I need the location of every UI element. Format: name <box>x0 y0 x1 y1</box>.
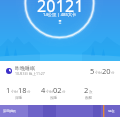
staticText: 02 <box>53 85 62 95</box>
staticText: 20121 <box>37 0 84 17</box>
staticText: 夜醒 <box>85 96 92 100</box>
button[interactable]: 4 <box>36 85 71 100</box>
button[interactable]: Sleep <box>0 61 120 80</box>
staticText: 深度睡眠 <box>3 109 16 113</box>
staticText: 小时 <box>46 90 53 94</box>
button[interactable]: 1 <box>0 85 36 100</box>
staticText: 分 <box>27 90 31 94</box>
staticText: 5 <box>90 66 95 76</box>
staticText: 浅睡 <box>50 96 57 100</box>
staticText: 18 <box>18 85 27 95</box>
staticText: 10月3日 晚上11:27 <box>15 71 45 76</box>
staticText: 1 <box>6 85 11 95</box>
staticText: 次 <box>89 90 93 94</box>
other: Sleep <box>6 68 12 74</box>
staticText: 小时 <box>95 71 102 75</box>
staticText: 14公里 | 485大卡 <box>43 12 77 18</box>
staticText: 深睡 <box>15 96 22 100</box>
staticText: 小时 <box>11 90 18 94</box>
staticText: 分 <box>62 90 66 94</box>
staticText: 分 <box>111 71 115 75</box>
button[interactable]: 2 <box>71 85 106 100</box>
staticText: 昨晚睡眠 <box>15 65 35 71</box>
staticText: 2 <box>84 85 89 95</box>
staticText: 现在 <box>108 109 115 113</box>
staticText: 4 <box>41 85 46 95</box>
button[interactable]: 深度睡眠 <box>0 105 120 117</box>
staticText: 20 <box>102 66 111 76</box>
other: Goal <box>58 20 62 24</box>
